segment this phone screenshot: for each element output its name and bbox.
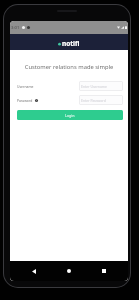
button[interactable]: Enter Password [81,95,121,105]
staticText: notifi [62,39,80,48]
staticText: Enter Username [81,84,107,89]
staticText: Customer relations made simple [10,63,128,71]
staticText: Password [17,98,33,103]
button[interactable]: Login [17,110,123,120]
button[interactable]: Enter Username [81,81,121,91]
staticText: Login [65,113,75,118]
staticText: 3:01 [11,25,20,31]
button[interactable]: Home [58,261,80,281]
button[interactable]: Back [23,261,45,281]
staticText: Enter Password [81,98,106,103]
staticText: Username [17,84,34,89]
button[interactable]: Recent apps [93,261,115,281]
